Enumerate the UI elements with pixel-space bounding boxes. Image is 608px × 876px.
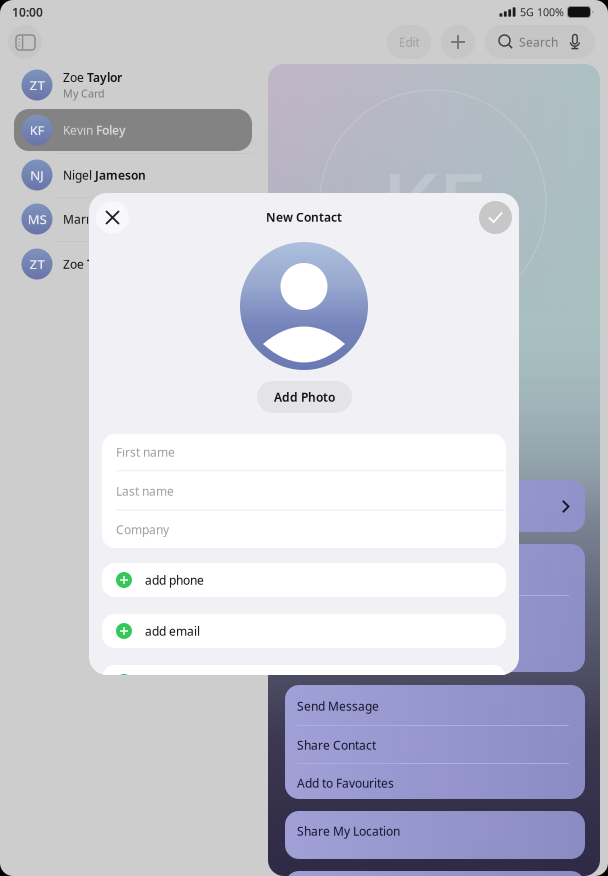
staticText: Add Photo [274,389,335,405]
staticText: add url [145,674,184,690]
staticText: Share My Location [297,823,400,839]
staticText: ZT [29,76,44,94]
button[interactable]: Toggle Sidebar [8,25,42,59]
button[interactable]: add url [102,665,506,699]
staticText: Maria Silva [63,211,126,227]
staticText: Zoe Taylor [63,256,122,272]
staticText: Search [519,34,558,50]
button[interactable]: Close [96,201,129,234]
staticText: New Contact [266,209,342,225]
button[interactable]: ZT [0,64,268,106]
staticText: 10:00 [12,4,43,20]
staticText: First name [116,444,175,460]
staticText: 5G 100% [517,5,567,19]
staticText: Company [116,521,169,537]
staticText: Kevin Foley [63,122,126,138]
staticText: Last name [116,483,174,499]
button[interactable]: add phone [102,563,506,597]
staticText: Share Contact [297,737,376,753]
button[interactable]: Add Contact [441,25,475,59]
staticText: add email [145,623,200,639]
button[interactable]: MS [0,198,268,240]
staticText: Edit [398,34,419,50]
button[interactable]: NJ [0,154,268,196]
staticText: NJ [30,166,44,184]
button[interactable]: Edit [387,25,431,59]
button[interactable]: Add Photo [257,381,352,413]
staticText: add phone [145,572,204,588]
staticText: Zoe Taylor [63,69,122,85]
staticText: Nigel Jameson [63,167,146,183]
button[interactable]: Search [485,25,595,59]
staticText: Add to Favourites [297,775,394,791]
staticText: Send Message [297,698,379,714]
staticText: KF [29,121,44,139]
staticText: My Card [63,86,105,101]
button[interactable]: KF [0,109,268,151]
button[interactable]: Done [479,201,512,234]
staticText: ZT [29,255,44,273]
staticText: MS [27,210,46,228]
button[interactable]: ZT [0,243,268,285]
staticText: KF [381,144,484,262]
button[interactable]: add email [102,614,506,648]
